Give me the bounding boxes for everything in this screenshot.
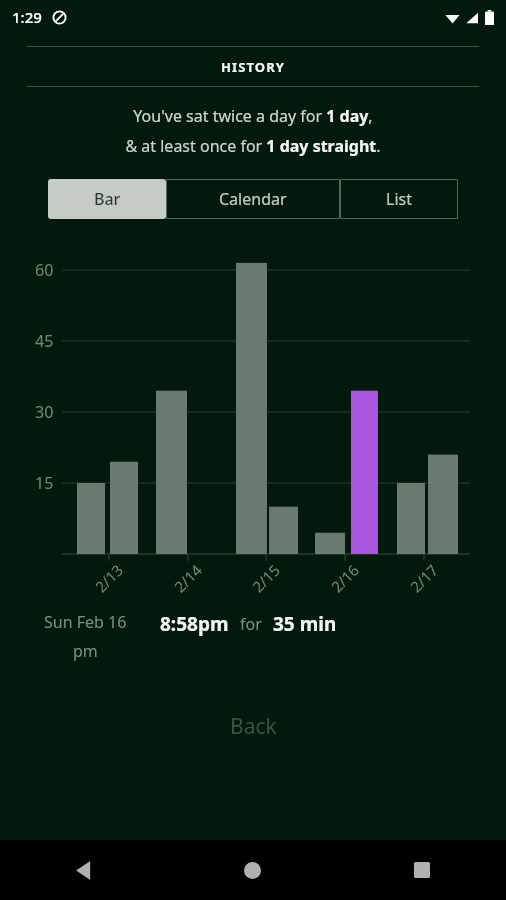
button[interactable]: Back bbox=[196, 702, 311, 751]
button[interactable]: Home bbox=[168, 840, 337, 900]
staticText: 35 min bbox=[273, 611, 337, 637]
button[interactable]: Back bbox=[0, 840, 168, 900]
staticText: & at least once for 1 day straight. bbox=[125, 135, 381, 157]
staticText: 30 bbox=[35, 401, 54, 423]
staticText: 1:29 bbox=[12, 7, 42, 27]
staticText: 45 bbox=[35, 330, 54, 352]
staticText: 60 bbox=[35, 259, 54, 281]
staticText: Bar bbox=[94, 188, 121, 210]
staticText: 2/14 bbox=[170, 560, 206, 596]
staticText: 2/16 bbox=[327, 560, 363, 596]
staticText: 2/17 bbox=[406, 560, 442, 596]
staticText: Calendar bbox=[219, 188, 287, 210]
staticText: for bbox=[240, 613, 262, 635]
button[interactable]: Recent apps bbox=[337, 840, 506, 900]
staticText: 8:58pm bbox=[160, 611, 229, 637]
staticText: pm bbox=[73, 640, 98, 662]
staticText: Back bbox=[230, 712, 277, 741]
staticText: 2/13 bbox=[91, 560, 127, 596]
staticText: 15 bbox=[35, 472, 54, 494]
staticText: HISTORY bbox=[221, 58, 286, 76]
staticText: Sun Feb 16 bbox=[44, 611, 127, 633]
button[interactable]: Bar bbox=[48, 179, 166, 219]
button[interactable]: List bbox=[340, 179, 458, 219]
staticText: You've sat twice a day for 1 day, bbox=[133, 105, 373, 127]
button[interactable]: Calendar bbox=[166, 179, 340, 219]
staticText: 2/15 bbox=[248, 560, 284, 596]
staticText: List bbox=[386, 188, 412, 210]
